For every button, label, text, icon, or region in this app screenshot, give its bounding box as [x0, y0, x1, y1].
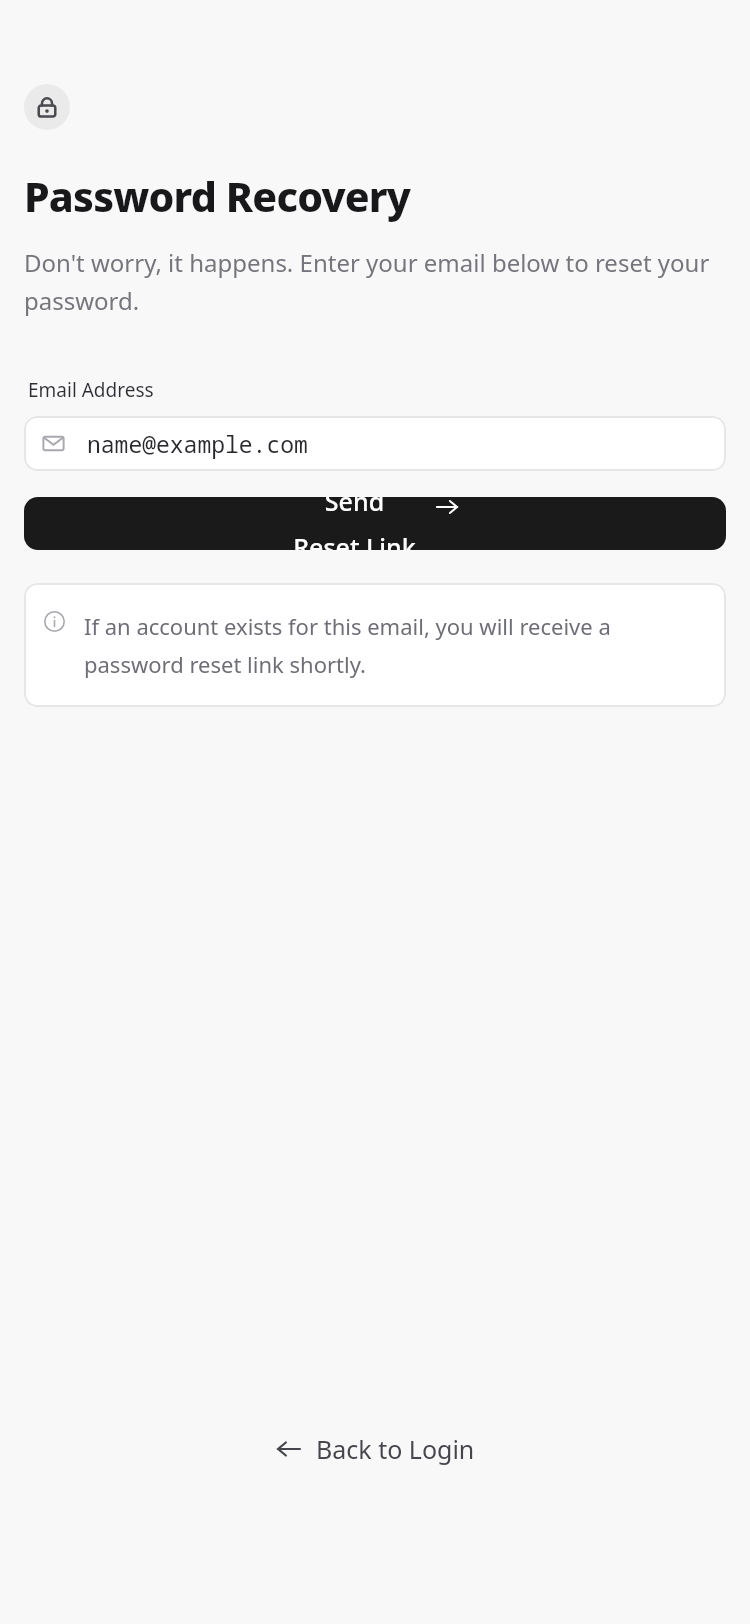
- other: Back: [276, 1436, 302, 1462]
- staticText: Don't worry, it happens. Enter your emai…: [24, 246, 726, 317]
- staticText: Password Recovery: [24, 168, 411, 224]
- staticText: Email Address: [28, 377, 154, 403]
- button[interactable]: Send Reset Link: [24, 497, 726, 550]
- button[interactable]: Back: [260, 1424, 491, 1474]
- staticText: name@example.com: [87, 428, 308, 459]
- button[interactable]: name@example.com: [24, 416, 726, 471]
- staticText: Send Reset Link: [292, 497, 417, 550]
- staticText: If an account exists for this email, you…: [84, 611, 706, 679]
- staticText: Back to Login: [316, 1432, 475, 1466]
